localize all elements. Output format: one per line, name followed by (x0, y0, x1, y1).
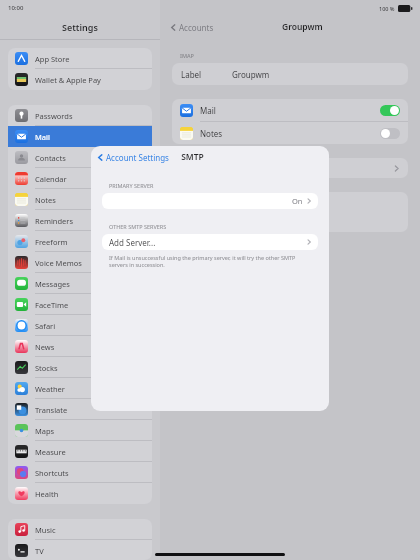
button[interactable]: Shortcuts (8, 462, 152, 483)
staticText: Maps (35, 426, 55, 436)
button[interactable]: Health (8, 483, 152, 504)
staticText: Mail (35, 132, 50, 142)
staticText: News (35, 342, 55, 352)
button[interactable]: On (102, 193, 318, 209)
staticText: TV (35, 546, 44, 556)
button[interactable]: Add Server... (102, 234, 318, 250)
button[interactable]: App Store (8, 48, 152, 69)
button[interactable]: Voice Memos (8, 252, 152, 273)
staticText: Messages (35, 279, 70, 289)
staticText: Safari (35, 321, 56, 331)
staticText: Music (35, 525, 56, 535)
staticText: Weather (35, 384, 65, 394)
button[interactable]: Accounts (168, 20, 216, 35)
staticText: If Mail is unsuccessful using the primar… (109, 254, 311, 268)
button[interactable]: Label (172, 63, 408, 85)
staticText: Passwords (35, 111, 73, 121)
button[interactable]: Stocks (8, 357, 152, 378)
staticText: Measure (35, 447, 66, 457)
staticText: Add Server... (109, 237, 156, 248)
staticText: Mail (200, 105, 216, 116)
staticText: Health (35, 489, 59, 499)
staticText: Accounts (179, 22, 214, 33)
staticText: Contacts (35, 153, 66, 163)
staticText: Translate (35, 405, 68, 415)
button[interactable]: Reminders (8, 210, 152, 231)
button[interactable]: Wallet & Apple Pay (8, 69, 152, 90)
button[interactable]: Weather (8, 378, 152, 399)
button[interactable]: Translate (8, 399, 152, 420)
staticText: 100 % (379, 5, 395, 12)
staticText: App Store (35, 54, 70, 64)
button[interactable]: Mail (172, 99, 408, 121)
staticText: IMAP (180, 52, 194, 59)
staticText: SMTP (181, 151, 204, 163)
button[interactable]: News (8, 336, 152, 357)
button[interactable] (172, 158, 408, 178)
button[interactable]: Notes (8, 189, 152, 210)
button[interactable]: TV (8, 540, 152, 560)
button[interactable]: Notes off (380, 128, 400, 139)
button[interactable]: Safari (8, 315, 152, 336)
button[interactable]: Mail on (380, 105, 400, 116)
button[interactable]: Contacts (8, 147, 152, 168)
staticText: Notes (35, 195, 56, 205)
button[interactable]: Freeform (8, 231, 152, 252)
button[interactable]: Calendar (8, 168, 152, 189)
staticText: Account Settings (106, 152, 169, 163)
staticText: Calendar (35, 174, 67, 184)
staticText: PRIMARY SERVER (109, 182, 154, 189)
staticText: Stocks (35, 363, 58, 373)
staticText: OTHER SMTP SERVERS (109, 223, 167, 230)
staticText: Voice Memos (35, 258, 82, 268)
button[interactable]: Messages (8, 273, 152, 294)
staticText: 10:00 (8, 4, 24, 12)
staticText: Freeform (35, 237, 68, 247)
button[interactable]: Notes (172, 122, 408, 144)
button[interactable]: Mail (8, 126, 152, 147)
staticText: Reminders (35, 216, 74, 226)
staticText: Settings (62, 21, 98, 33)
staticText: Wallet & Apple Pay (35, 75, 101, 85)
staticText: Label (181, 69, 202, 80)
button[interactable]: Maps (8, 420, 152, 441)
button[interactable]: Music (8, 519, 152, 540)
staticText: Groupwm (232, 69, 270, 80)
staticText: Notes (200, 128, 223, 139)
staticText: On (292, 196, 303, 206)
staticText: Groupwm (282, 21, 323, 33)
button[interactable]: FaceTime (8, 294, 152, 315)
button[interactable]: Passwords (8, 105, 152, 126)
staticText: FaceTime (35, 300, 69, 310)
button[interactable]: Measure (8, 441, 152, 462)
button[interactable]: Account Settings (95, 149, 171, 166)
staticText: Shortcuts (35, 468, 69, 478)
